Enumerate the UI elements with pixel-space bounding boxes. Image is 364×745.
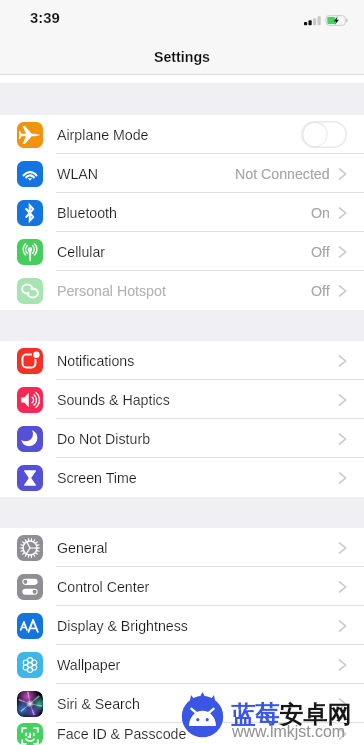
button[interactable]: Display & Brightness xyxy=(0,606,364,645)
staticText: 3:39 xyxy=(30,10,60,27)
staticText: www.lmkjst.com xyxy=(232,723,346,741)
button[interactable]: Do Not Disturb xyxy=(0,419,364,458)
button[interactable]: Airplane Mode xyxy=(0,115,364,154)
staticText: Screen Time xyxy=(57,470,137,486)
button[interactable]: Wallpaper xyxy=(0,645,364,684)
staticText: Display & Brightness xyxy=(57,618,188,634)
staticText: Settings xyxy=(154,49,210,65)
staticText: Bluetooth xyxy=(57,205,117,221)
staticText: Siri & Search xyxy=(57,696,140,712)
button[interactable]: Bluetooth xyxy=(0,193,364,232)
staticText: Off xyxy=(311,244,330,260)
staticText: WLAN xyxy=(57,166,98,182)
button[interactable]: Face ID & Passcode xyxy=(0,723,364,745)
button[interactable]: Sounds & Haptics xyxy=(0,380,364,419)
staticText: Off xyxy=(311,283,330,299)
staticText: Not Connected xyxy=(235,166,330,182)
button[interactable]: Siri & Search xyxy=(0,684,364,723)
staticText: Sounds & Haptics xyxy=(57,392,170,408)
button[interactable]: Screen Time xyxy=(0,458,364,497)
button[interactable]: Cellular xyxy=(0,232,364,271)
staticText: Notifications xyxy=(57,353,135,369)
button[interactable]: General xyxy=(0,528,364,567)
staticText: 安卓网 xyxy=(279,700,351,730)
staticText: General xyxy=(57,540,108,556)
staticText: Personal Hotspot xyxy=(57,283,166,299)
button[interactable]: Personal Hotspot xyxy=(0,271,364,310)
staticText: Cellular xyxy=(57,244,106,260)
staticText: 蓝莓 xyxy=(231,700,279,730)
button[interactable]: Airplane Mode toggle xyxy=(301,121,347,148)
staticText: Do Not Disturb xyxy=(57,431,151,447)
staticText: Airplane Mode xyxy=(57,127,149,143)
staticText: On xyxy=(311,205,330,221)
button[interactable]: Notifications xyxy=(0,341,364,380)
staticText: Face ID & Passcode xyxy=(57,726,187,742)
staticText: Control Center xyxy=(57,579,150,595)
button[interactable]: Control Center xyxy=(0,567,364,606)
staticText: Wallpaper xyxy=(57,657,121,673)
button[interactable]: WLAN xyxy=(0,154,364,193)
